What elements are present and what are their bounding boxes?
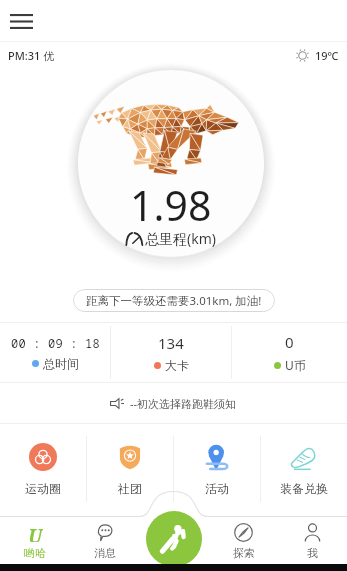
- staticText: 00 : 09 : 18: [11, 335, 100, 351]
- button[interactable]: 装备兑换: [261, 424, 347, 514]
- staticText: 1.98: [130, 177, 212, 233]
- button[interactable]: 134: [111, 322, 231, 383]
- staticText: U币: [285, 357, 306, 373]
- button[interactable]: Menu: [3, 3, 39, 39]
- staticText: 社团: [118, 481, 142, 496]
- staticText: 距离下一等级还需要3.01km, 加油!: [86, 293, 262, 309]
- button[interactable]: 探索: [209, 518, 278, 564]
- button[interactable]: Start run: [146, 511, 202, 567]
- button[interactable]: 运动圈: [0, 424, 86, 514]
- staticText: 哟哈: [24, 546, 46, 560]
- staticText: 运动圈: [25, 481, 61, 496]
- staticText: 我: [307, 546, 318, 560]
- button[interactable]: 距离下一等级还需要3.01km, 加油!: [73, 289, 275, 312]
- staticText: --初次选择路跑鞋须知: [130, 396, 237, 411]
- staticText: 总里程(km): [145, 229, 216, 248]
- staticText: U: [28, 523, 43, 542]
- button[interactable]: 社团: [87, 424, 173, 514]
- staticText: 消息: [94, 546, 116, 560]
- button[interactable]: 00 : 09 : 18: [0, 322, 110, 383]
- button[interactable]: U: [0, 518, 70, 564]
- staticText: 0: [285, 332, 294, 352]
- button[interactable]: 0: [232, 322, 347, 383]
- staticText: 总时间: [43, 356, 79, 371]
- staticText: 19℃: [315, 48, 339, 63]
- staticText: 装备兑换: [280, 481, 328, 496]
- button[interactable]: 活动: [174, 424, 260, 514]
- button[interactable]: 我: [278, 518, 347, 564]
- button[interactable]: 消息: [70, 518, 140, 564]
- staticText: 活动: [205, 481, 229, 496]
- staticText: 探索: [233, 546, 255, 560]
- staticText: 134: [158, 333, 184, 353]
- staticText: PM:31 优: [8, 48, 55, 63]
- button[interactable]: --初次选择路跑鞋须知: [0, 383, 347, 424]
- staticText: 大卡: [165, 358, 189, 373]
